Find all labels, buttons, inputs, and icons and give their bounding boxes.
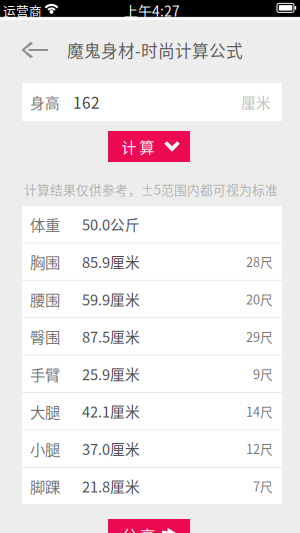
staticText: 体重 xyxy=(30,213,60,235)
staticText: 计 算 xyxy=(121,135,154,158)
staticText: 59.9厘米 xyxy=(82,288,140,310)
staticText: 运营商 xyxy=(3,1,42,20)
staticText: 25.9厘米 xyxy=(82,363,140,384)
staticText: 腰围 xyxy=(30,288,60,310)
staticText: 7尺 xyxy=(253,477,273,495)
staticText: 厘米 xyxy=(241,91,271,113)
staticText: 分 享 xyxy=(122,523,155,533)
staticText: 42.1厘米 xyxy=(82,401,140,422)
staticText: 上午4:27 xyxy=(124,0,180,21)
staticText: 14尺 xyxy=(246,402,273,420)
staticText: 50.0公斤 xyxy=(82,214,140,235)
button[interactable]: 魔鬼身材-时尚计算公式 xyxy=(0,20,300,80)
button[interactable]: 计 算 xyxy=(108,131,190,162)
staticText: 21.8厘米 xyxy=(82,475,140,497)
staticText: 28尺 xyxy=(246,252,273,271)
staticText: 12尺 xyxy=(246,439,273,458)
staticText: 身高 xyxy=(30,91,60,113)
staticText: 胸围 xyxy=(30,250,60,273)
staticText: 162 xyxy=(73,91,100,113)
staticText: 小腿 xyxy=(30,437,60,460)
button[interactable]: 分 享 xyxy=(108,519,190,533)
staticText: 85.9厘米 xyxy=(82,251,140,272)
staticText: 20尺 xyxy=(246,290,273,308)
staticText: 29尺 xyxy=(246,327,273,345)
staticText: 魔鬼身材-时尚计算公式 xyxy=(67,38,243,62)
staticText: 87.5厘米 xyxy=(82,326,140,347)
staticText: 脚踝 xyxy=(30,475,60,497)
staticText: 计算结果仅供参考，±5范围内都可视为标准 xyxy=(24,180,278,198)
staticText: 手臂 xyxy=(30,363,60,385)
staticText: 37.0厘米 xyxy=(82,438,140,459)
staticText: 臀围 xyxy=(30,325,60,347)
staticText: 9尺 xyxy=(253,365,273,383)
staticText: 大腿 xyxy=(30,400,60,422)
